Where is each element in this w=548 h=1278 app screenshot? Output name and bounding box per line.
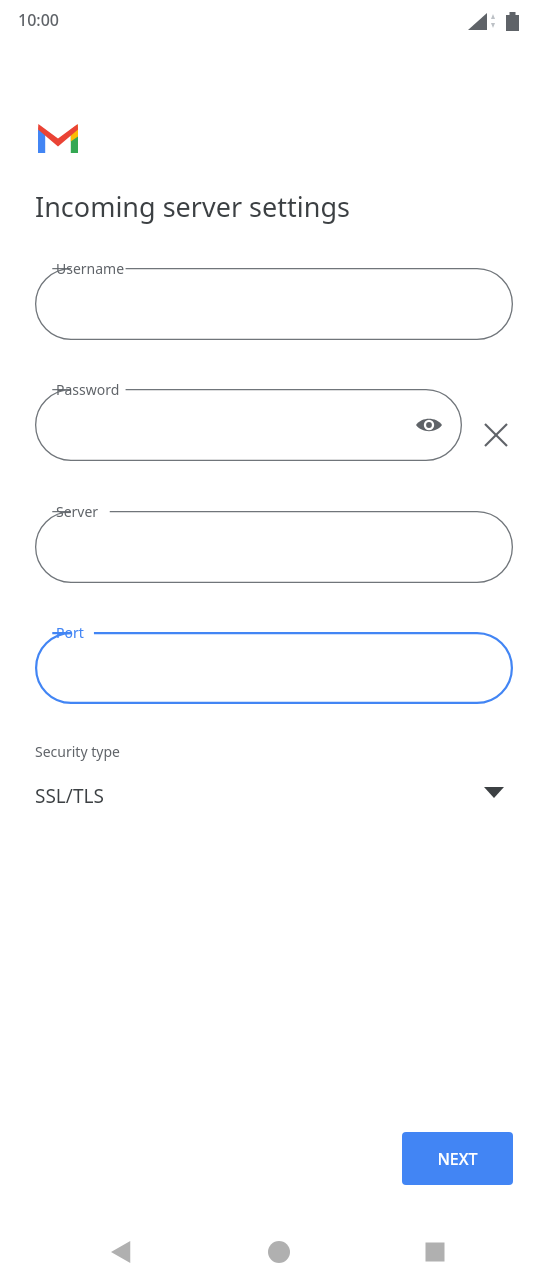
staticText: NEXT xyxy=(437,1148,478,1170)
button[interactable]: Port xyxy=(35,632,513,704)
button[interactable]: Security type xyxy=(35,738,513,820)
staticText: 10:00 xyxy=(18,9,59,31)
button[interactable]: Password xyxy=(35,389,462,461)
button[interactable]: Clear xyxy=(475,414,517,456)
button[interactable]: Back xyxy=(98,1228,146,1276)
staticText: Server xyxy=(56,502,99,521)
button[interactable]: Show password xyxy=(408,404,450,446)
staticText: Security type xyxy=(35,742,120,761)
other: Gmail xyxy=(38,123,78,153)
staticText: Username xyxy=(56,259,125,278)
button[interactable]: NEXT xyxy=(402,1132,513,1185)
button[interactable]: Home xyxy=(255,1228,303,1276)
staticText: Incoming server settings xyxy=(35,188,350,225)
staticText: Port xyxy=(56,623,84,642)
staticText: SSL/TLS xyxy=(35,783,104,809)
button[interactable]: Recent apps xyxy=(411,1228,459,1276)
button[interactable]: Server xyxy=(35,511,513,583)
button[interactable]: Username xyxy=(35,268,513,340)
staticText: Password xyxy=(56,380,120,399)
